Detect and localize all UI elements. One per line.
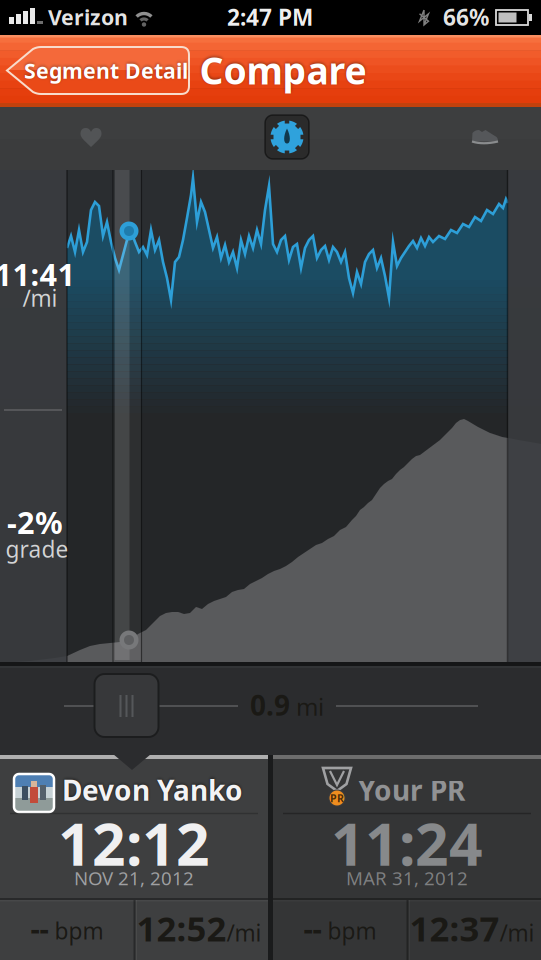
staticText: 12:52/mi xyxy=(136,905,261,951)
staticText: /mi xyxy=(22,283,57,313)
staticText: PR xyxy=(330,791,344,805)
button[interactable]: PR xyxy=(273,759,541,960)
button[interactable]: Distance slider xyxy=(94,674,158,737)
staticText: -2% xyxy=(7,502,63,542)
staticText: Verizon xyxy=(48,3,128,31)
staticText: -- bpm xyxy=(303,908,376,947)
button[interactable]: Pace xyxy=(265,115,309,159)
staticText: 12:37/mi xyxy=(409,905,534,951)
staticText: NOV 21, 2012 xyxy=(74,866,194,890)
staticText: 12:12 xyxy=(58,804,210,882)
staticText: 11:41 xyxy=(0,254,75,294)
staticText: grade xyxy=(5,534,68,564)
staticText: Compare xyxy=(199,45,366,95)
button[interactable]: Heart Rate xyxy=(69,115,113,159)
button[interactable]: Shoes xyxy=(463,115,507,159)
button[interactable]: Segment Detail xyxy=(7,47,189,94)
staticText: Devon Yanko xyxy=(62,771,243,809)
staticText: 0.9 mi xyxy=(250,686,324,724)
staticText: 11:24 xyxy=(331,804,483,882)
staticText: Your PR xyxy=(358,771,465,809)
staticText: MAR 31, 2012 xyxy=(346,866,468,890)
button[interactable]: Devon Yanko xyxy=(0,759,268,960)
staticText: Segment Detail xyxy=(24,56,188,85)
staticText: 2:47 PM xyxy=(227,2,313,32)
staticText: 66% xyxy=(443,2,489,32)
staticText: -- bpm xyxy=(30,908,103,947)
